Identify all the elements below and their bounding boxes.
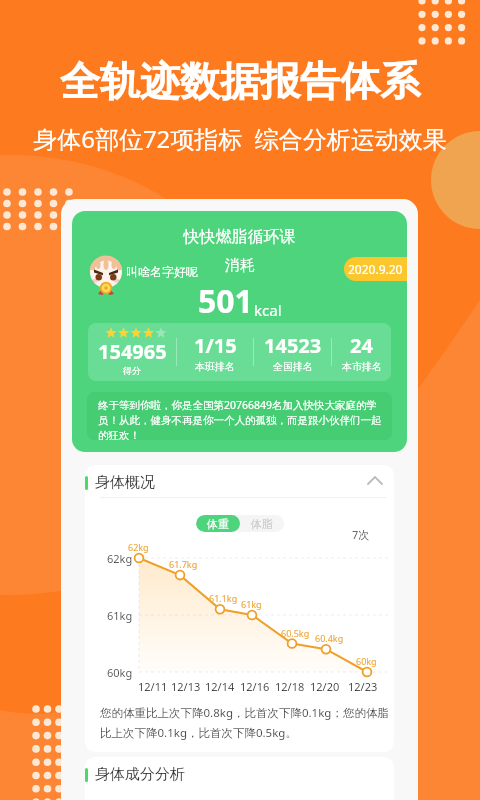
staticText: 61.1kg xyxy=(209,592,238,604)
staticText: 12/11 xyxy=(138,679,168,694)
staticText: 您的体重比上次下降0.8kg，比首次下降0.1kg；您的体脂比上次下降0.1kg… xyxy=(100,705,392,740)
button[interactable]: 2020.9.20 xyxy=(344,257,407,281)
staticText: 终于等到你啦，你是全国第20766849名加入快快大家庭的学员！从此，健身不再是… xyxy=(98,398,384,440)
button[interactable]: 身体成分分析 xyxy=(85,757,394,800)
button[interactable]: 154965 xyxy=(88,323,391,381)
staticText: 61.7kg xyxy=(169,558,198,570)
staticText: 60.4kg xyxy=(315,632,344,644)
staticText: 12/13 xyxy=(171,679,201,694)
staticText: 501 xyxy=(198,279,253,323)
staticText: 体脂 xyxy=(251,517,273,531)
staticText: 全国排名 xyxy=(273,360,313,373)
staticText: 61kg xyxy=(107,608,133,623)
button[interactable]: 身体概况 xyxy=(85,465,394,500)
staticText: 62kg xyxy=(128,541,149,553)
staticText: 身体成分分析 xyxy=(95,765,185,784)
staticText: 消耗 xyxy=(225,256,255,275)
button[interactable]: 体脂 xyxy=(240,515,284,532)
staticText: 叫啥名字好呢 xyxy=(126,264,198,279)
other: User avatar xyxy=(86,255,126,299)
staticText: 7次 xyxy=(352,527,370,542)
staticText: 得分 xyxy=(123,365,141,376)
staticText: 2020.9.20 xyxy=(348,261,403,277)
staticText: 154965 xyxy=(98,338,167,365)
button[interactable]: 身体成分分析 xyxy=(85,757,394,792)
staticText: 1/15 xyxy=(194,332,237,359)
staticText: 本市排名 xyxy=(342,360,382,373)
staticText: 62kg xyxy=(107,551,133,566)
staticText: 12/16 xyxy=(240,679,270,694)
staticText: 身体概况 xyxy=(95,473,155,492)
staticText: 体重 xyxy=(207,517,229,531)
staticText: 60.5kg xyxy=(281,627,310,639)
staticText: 14523 xyxy=(264,332,322,359)
button[interactable]: 体重 xyxy=(196,515,240,532)
other: Collapse xyxy=(366,473,378,493)
staticText: 60kg xyxy=(107,665,133,680)
staticText: 12/23 xyxy=(348,679,378,694)
staticText: 本班排名 xyxy=(195,360,235,373)
staticText: 12/20 xyxy=(310,679,340,694)
staticText: 12/14 xyxy=(205,679,235,694)
staticText: 快快燃脂循环课 xyxy=(72,227,407,247)
staticText: 60kg xyxy=(356,655,377,667)
button[interactable]: 终于等到你啦，你是全国第20766849名加入快快大家庭的学员！从此，健身不再是… xyxy=(87,392,392,440)
staticText: 61kg xyxy=(241,598,262,610)
staticText: 身体6部位72项指标 综合分析运动效果 xyxy=(0,122,480,155)
staticText: 12/18 xyxy=(275,679,305,694)
staticText: 24 xyxy=(350,332,373,359)
staticText: 全轨迹数据报告体系 xyxy=(0,56,480,106)
staticText: kcal xyxy=(254,300,282,320)
